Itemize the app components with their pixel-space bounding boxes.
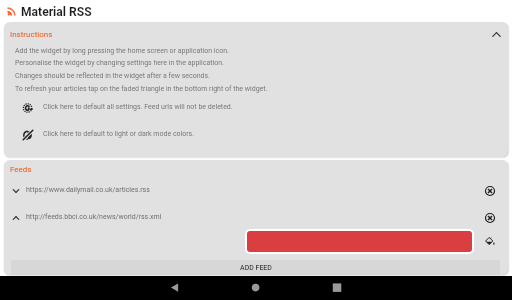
- button[interactable]: https://www.dailymail.co.uk/articles.rss: [4, 180, 508, 201]
- staticText: ADD FEED: [240, 264, 272, 272]
- staticText: Material RSS: [21, 5, 92, 19]
- staticText: http://feeds.bbci.co.uk/news/world/rss.x…: [26, 213, 162, 221]
- staticText: Click here to default all settings. Feed…: [43, 103, 233, 111]
- button[interactable]: Feed colour swatch: [247, 231, 472, 252]
- staticText: Feeds: [10, 165, 32, 174]
- button[interactable]: Click here to default to light or dark m…: [8, 123, 504, 146]
- button[interactable]: Click here to default all settings. Feed…: [8, 96, 504, 119]
- staticText: Personalise the widget by changing setti…: [15, 59, 224, 67]
- button[interactable]: ADD FEED: [11, 260, 500, 275]
- staticText: Add the widget by long pressing the home…: [15, 47, 229, 55]
- button[interactable]: http://feeds.bbci.co.uk/news/world/rss.x…: [4, 207, 508, 228]
- button[interactable]: Remove feed: [481, 182, 499, 200]
- staticText: Click here to default to light or dark m…: [43, 130, 195, 138]
- staticText: Changes should be reflected in the widge…: [15, 72, 210, 80]
- button[interactable]: Remove feed: [481, 209, 499, 227]
- staticText: Instructions: [10, 30, 53, 39]
- staticText: To refresh your articles tap on the fade…: [15, 85, 268, 93]
- button[interactable]: Collapse instructions: [488, 26, 504, 42]
- button[interactable]: Choose colour: [481, 232, 498, 249]
- staticText: https://www.dailymail.co.uk/articles.rss: [26, 186, 150, 194]
